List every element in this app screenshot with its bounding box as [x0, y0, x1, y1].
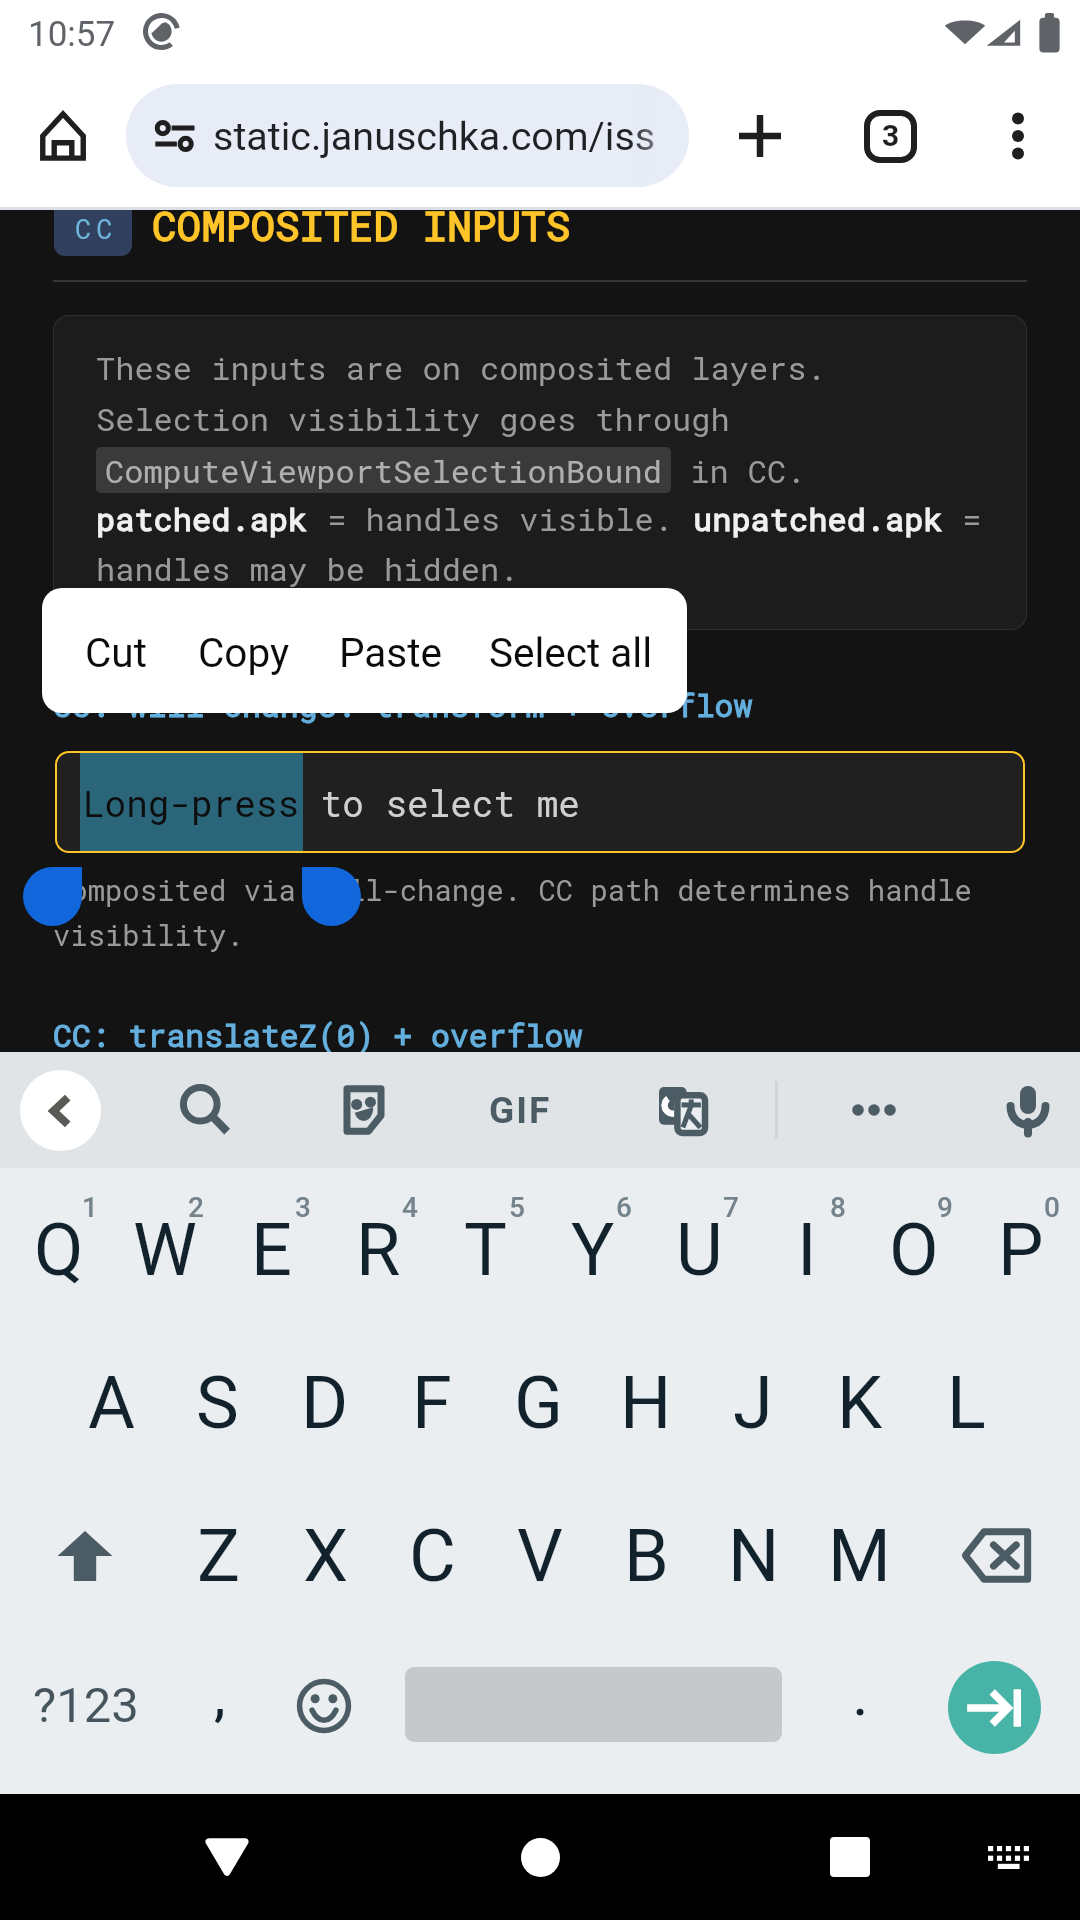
button[interactable]: L	[913, 1326, 1020, 1479]
staticText: =	[943, 497, 982, 539]
button[interactable]: Paste	[314, 588, 466, 713]
staticText: Copy	[198, 629, 290, 676]
staticText: X	[303, 1514, 349, 1598]
button[interactable]: Home	[21, 94, 105, 178]
button[interactable]: Back	[20, 1070, 101, 1151]
button[interactable]: More options	[972, 90, 1064, 182]
button[interactable]: G	[485, 1326, 592, 1479]
button[interactable]: static.januschka.com/iss	[126, 84, 689, 187]
button[interactable]: R	[325, 1173, 432, 1326]
staticText: Paste	[339, 629, 442, 676]
button[interactable]: V	[486, 1479, 593, 1632]
button[interactable]: Back	[147, 1794, 307, 1920]
staticText: O	[889, 1208, 939, 1292]
staticText: N	[728, 1514, 780, 1598]
button[interactable]: P	[967, 1173, 1074, 1326]
button[interactable]: Stickers	[318, 1052, 410, 1168]
button[interactable]: More options	[828, 1052, 920, 1168]
button[interactable]: F	[378, 1326, 485, 1479]
staticText: ?123	[33, 1677, 139, 1734]
button[interactable]: Copy	[174, 588, 314, 713]
staticText: F	[412, 1361, 452, 1445]
staticText: visibility.	[53, 916, 244, 954]
button[interactable]: Recent apps	[770, 1794, 930, 1920]
staticText: Cut	[85, 629, 147, 676]
button[interactable]: GIF	[450, 1052, 590, 1168]
staticText: Long-press	[83, 779, 300, 826]
staticText: to select me	[299, 779, 580, 826]
button[interactable]: .	[812, 1632, 908, 1785]
button[interactable]: Backspace	[914, 1479, 1080, 1632]
button[interactable]: Z	[165, 1479, 272, 1632]
staticText: = handles visible.	[308, 497, 693, 539]
button[interactable]: M	[806, 1479, 913, 1632]
button[interactable]: ?123	[0, 1632, 172, 1785]
button[interactable]: S	[164, 1326, 271, 1479]
button[interactable]: Shift	[0, 1479, 165, 1632]
staticText: M	[828, 1514, 891, 1598]
staticText: CC	[75, 211, 118, 247]
staticText: .	[853, 1667, 868, 1728]
button[interactable]: Home	[460, 1794, 620, 1920]
button[interactable]: Y	[539, 1173, 646, 1326]
staticText: B	[624, 1514, 669, 1598]
button[interactable]: Translate	[636, 1052, 728, 1168]
staticText: 4	[402, 1191, 418, 1224]
staticText: 3	[295, 1191, 311, 1224]
button[interactable]: Q	[5, 1173, 112, 1326]
staticText: K	[837, 1361, 883, 1445]
button[interactable]: U	[646, 1173, 753, 1326]
button[interactable]: I	[753, 1173, 860, 1326]
button[interactable]: X	[272, 1479, 379, 1632]
button[interactable]: C	[379, 1479, 486, 1632]
staticText: W	[133, 1208, 197, 1292]
button[interactable]: Cut	[58, 588, 174, 713]
staticText: R	[356, 1208, 401, 1292]
button[interactable]: N	[700, 1479, 807, 1632]
button[interactable]: Voice input	[982, 1052, 1074, 1168]
button[interactable]: W	[111, 1173, 218, 1326]
staticText: 6	[616, 1191, 632, 1224]
staticText: 0	[1044, 1191, 1060, 1224]
staticText: patched.apk	[96, 497, 308, 539]
staticText: Q	[34, 1208, 84, 1292]
staticText: V	[517, 1514, 563, 1598]
button[interactable]: K	[806, 1326, 913, 1479]
button[interactable]: J	[699, 1326, 806, 1479]
button[interactable]: H	[592, 1326, 699, 1479]
button[interactable]: Select all	[466, 588, 676, 713]
staticText: ComputeViewportSelectionBound	[105, 449, 662, 491]
staticText: Y	[571, 1208, 615, 1292]
button[interactable]: E	[218, 1173, 325, 1326]
staticText: in CC.	[671, 449, 806, 491]
staticText: U	[676, 1208, 723, 1292]
button[interactable]: A	[58, 1326, 165, 1479]
staticText: 9	[937, 1191, 953, 1224]
button[interactable]: D	[271, 1326, 378, 1479]
staticText: Select all	[489, 629, 653, 676]
staticText: Z	[197, 1514, 241, 1598]
button[interactable]: Emoji	[276, 1632, 372, 1785]
staticText: T	[464, 1208, 507, 1292]
button[interactable]: Switch keyboard	[948, 1794, 1068, 1920]
button[interactable]: B	[593, 1479, 700, 1632]
staticText: L	[947, 1361, 986, 1445]
staticText: Selection visibility goes through	[96, 397, 730, 439]
staticText: composited via will-change. CC path dete…	[53, 871, 972, 909]
button[interactable]: Search	[160, 1052, 252, 1168]
button[interactable]: Long-press	[55, 751, 1025, 853]
staticText: A	[88, 1361, 135, 1445]
staticText: E	[251, 1208, 292, 1292]
button[interactable]: Switch tabs, 3 open	[844, 90, 936, 182]
button[interactable]: O	[860, 1173, 967, 1326]
button[interactable]: T	[432, 1173, 539, 1326]
staticText: H	[620, 1361, 672, 1445]
staticText: P	[998, 1208, 1044, 1292]
staticText: These inputs are on composited layers.	[96, 346, 826, 388]
staticText: 3	[882, 118, 900, 153]
staticText: 5	[509, 1191, 525, 1224]
button[interactable]: Enter	[948, 1661, 1041, 1754]
button[interactable]: New tab	[714, 90, 806, 182]
button[interactable]: ,	[172, 1632, 268, 1785]
